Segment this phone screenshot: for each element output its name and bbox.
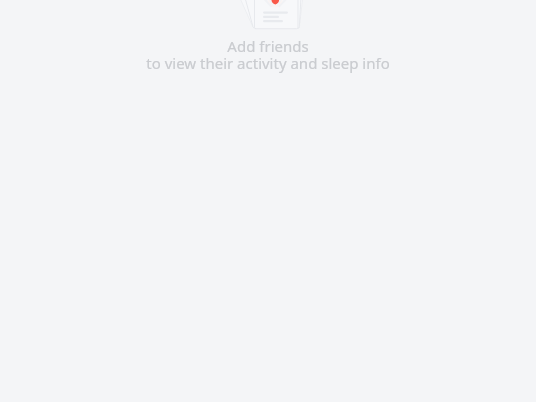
- button[interactable]: Add friends to view their activity and s…: [136, 36, 400, 73]
- staticText: Add friends to view their activity and s…: [146, 36, 390, 73]
- other: Friends activity illustration: [0, 0, 536, 402]
